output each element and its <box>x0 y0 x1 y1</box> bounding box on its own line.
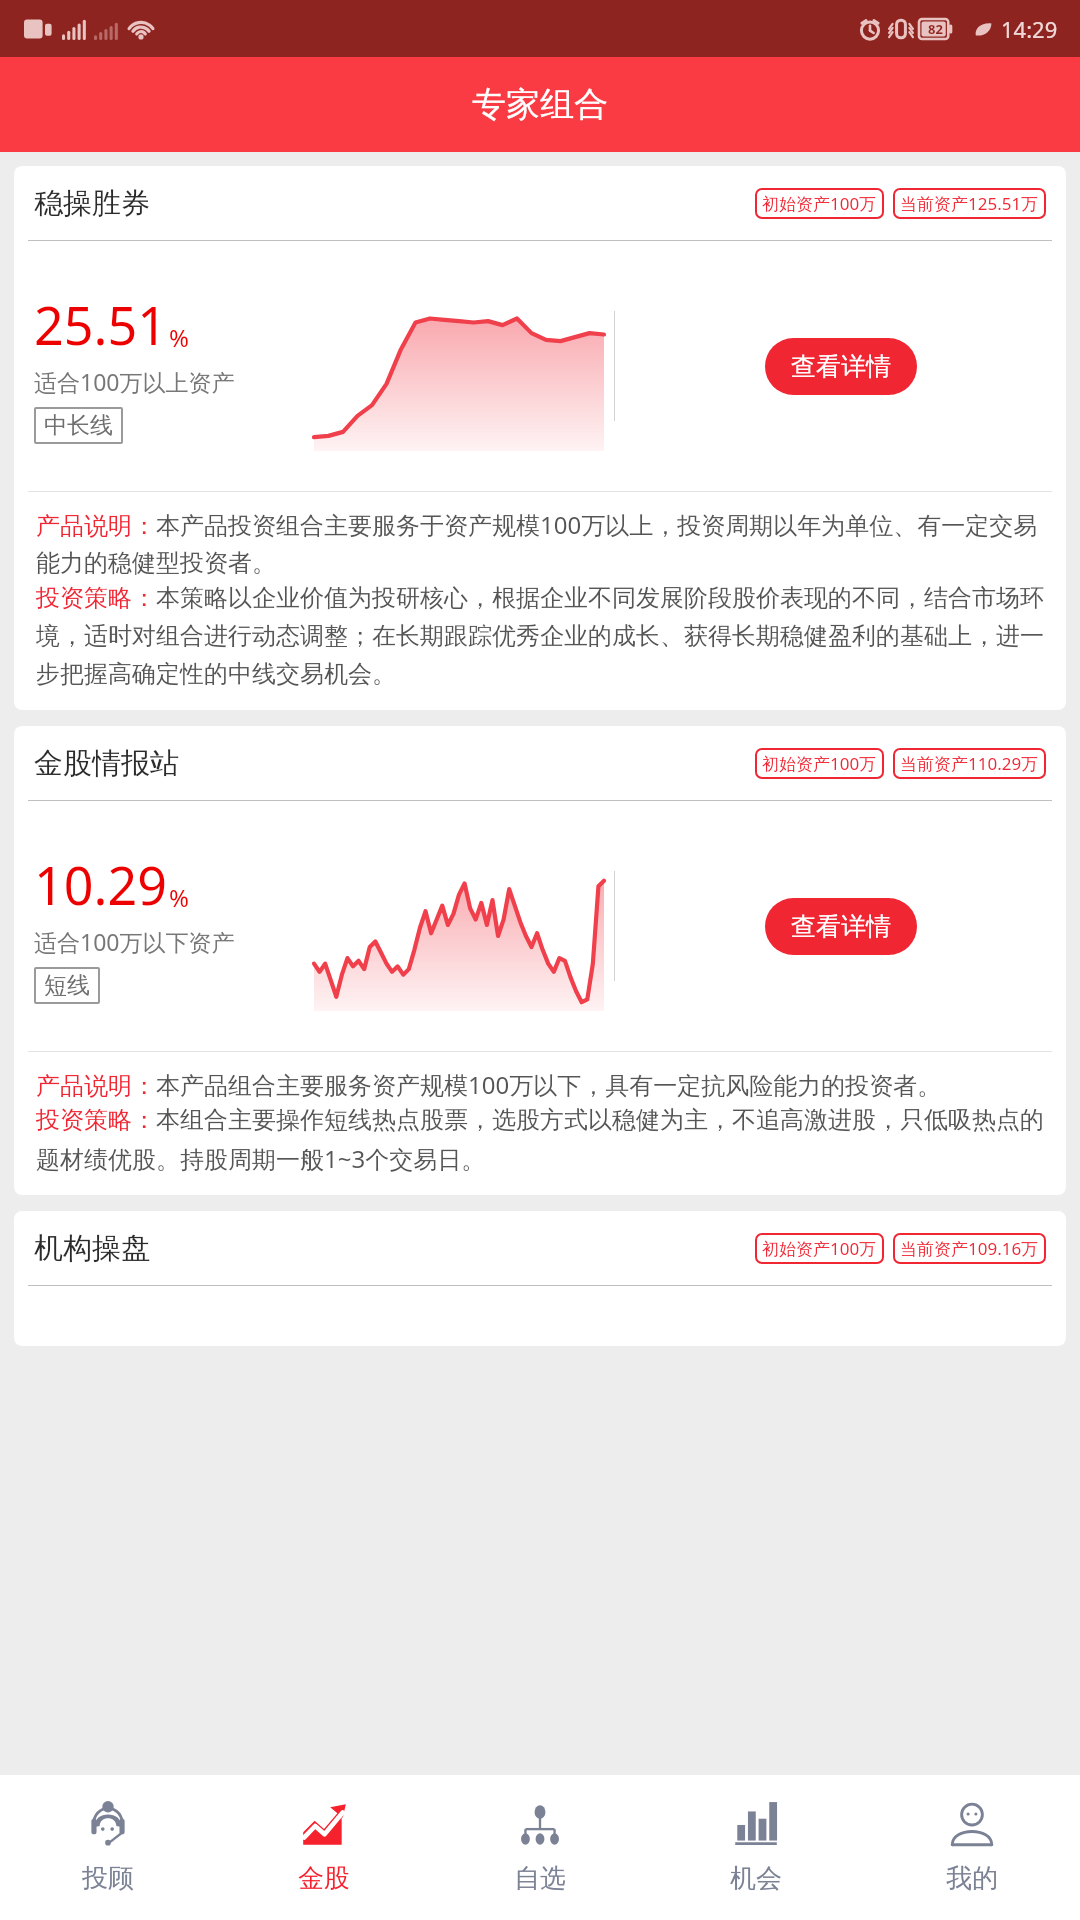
staticText: 短线 <box>44 971 90 1000</box>
staticText: 金股情报站 <box>34 745 179 782</box>
staticText: % <box>169 881 189 914</box>
staticText: 适合100万以下资产 <box>34 926 235 957</box>
staticText: 10.29 <box>34 849 167 920</box>
staticText: 查看详情 <box>791 911 891 942</box>
staticText: 当前资产109.16万 <box>900 1237 1039 1260</box>
staticText: % <box>169 321 189 354</box>
staticText: 初始资产100万 <box>762 752 877 775</box>
staticText: 专家组合 <box>472 83 608 126</box>
staticText: 25.51 <box>34 289 167 360</box>
staticText: 当前资产110.29万 <box>900 752 1039 775</box>
staticText: 适合100万以上资产 <box>34 366 235 397</box>
staticText: 当前资产125.51万 <box>900 192 1039 215</box>
staticText: 初始资产100万 <box>762 192 877 215</box>
button[interactable]: 查看详情 <box>765 898 917 955</box>
staticText: 14:29 <box>1001 14 1058 44</box>
button[interactable]: 稳操胜券 <box>14 166 1066 710</box>
staticText: 自选 <box>514 1862 566 1895</box>
staticText: 82 <box>928 20 943 38</box>
button[interactable]: 机会 <box>648 1775 864 1920</box>
staticText: 查看详情 <box>791 351 891 382</box>
staticText: 初始资产100万 <box>762 1237 877 1260</box>
staticText: 投资策略：本组合主要操作短线热点股票，选股方式以稳健为主，不追高激进股，只低吸热… <box>36 1105 1044 1175</box>
staticText: 中长线 <box>44 411 113 440</box>
button[interactable]: 自选 <box>432 1775 648 1920</box>
button[interactable]: 查看详情 <box>765 338 917 395</box>
button[interactable]: 金股情报站 <box>14 726 1066 1195</box>
staticText: 投顾 <box>82 1862 134 1895</box>
button[interactable]: 投顾 <box>0 1775 216 1920</box>
staticText: 投资策略：本策略以企业价值为投研核心，根据企业不同发展阶段股价表现的不同，结合市… <box>36 583 1044 690</box>
button[interactable]: 我的 <box>864 1775 1080 1920</box>
staticText: 产品说明：本产品组合主要服务资产规模100万以下，具有一定抗风险能力的投资者。 <box>36 1068 942 1101</box>
staticText: 产品说明：本产品投资组合主要服务于资产规模100万以上，投资周期以年为单位、有一… <box>36 508 1044 579</box>
button[interactable]: 金股 <box>216 1775 432 1920</box>
staticText: 机会 <box>730 1862 782 1895</box>
staticText: 我的 <box>946 1862 998 1895</box>
button[interactable]: 机构操盘 <box>14 1211 1066 1346</box>
staticText: 稳操胜券 <box>34 185 150 222</box>
staticText: 金股 <box>298 1862 350 1895</box>
staticText: 机构操盘 <box>34 1230 150 1267</box>
